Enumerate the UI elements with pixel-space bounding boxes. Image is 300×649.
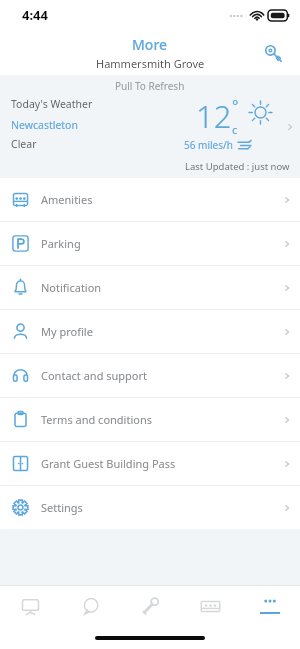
staticText: Contact and support (41, 368, 282, 383)
staticText: 4:44 (22, 6, 48, 24)
staticText: Notification (41, 280, 282, 295)
button[interactable]: Amenities (0, 178, 300, 221)
button[interactable]: Grant Guest Building Pass (0, 442, 300, 485)
button[interactable]: Services (120, 585, 180, 627)
button[interactable]: Messages (60, 585, 120, 627)
button[interactable]: Parking (0, 222, 300, 265)
staticText: More (132, 35, 168, 54)
staticText: Last Updated : just now (185, 160, 290, 173)
button[interactable]: Terms and conditions (0, 398, 300, 441)
button[interactable]: Pull To Refresh (0, 75, 300, 178)
staticText: ° (232, 95, 239, 115)
staticText: 12 (196, 95, 232, 137)
button[interactable]: Events (180, 585, 240, 627)
button[interactable]: Settings (0, 486, 300, 529)
staticText: Parking (41, 236, 282, 251)
staticText: Settings (41, 500, 282, 515)
staticText: Clear (11, 137, 37, 151)
staticText: 56 miles/h (184, 138, 233, 152)
staticText: Today's Weather (11, 97, 93, 111)
button[interactable]: More (240, 585, 300, 627)
button[interactable]: Contact and support (0, 354, 300, 397)
button[interactable]: Key (256, 36, 290, 70)
button[interactable]: Home (0, 585, 60, 627)
staticText: My profile (41, 324, 282, 339)
staticText: Pull To Refresh (115, 79, 185, 93)
staticText: Grant Guest Building Pass (41, 456, 282, 471)
staticText: c (232, 122, 238, 137)
button[interactable]: My profile (0, 310, 300, 353)
staticText: Amenities (41, 192, 282, 207)
button[interactable]: Notification (0, 266, 300, 309)
staticText: Hammersmith Grove (96, 56, 205, 71)
staticText: Newcastleton (11, 118, 78, 132)
staticText: Terms and conditions (41, 412, 282, 427)
